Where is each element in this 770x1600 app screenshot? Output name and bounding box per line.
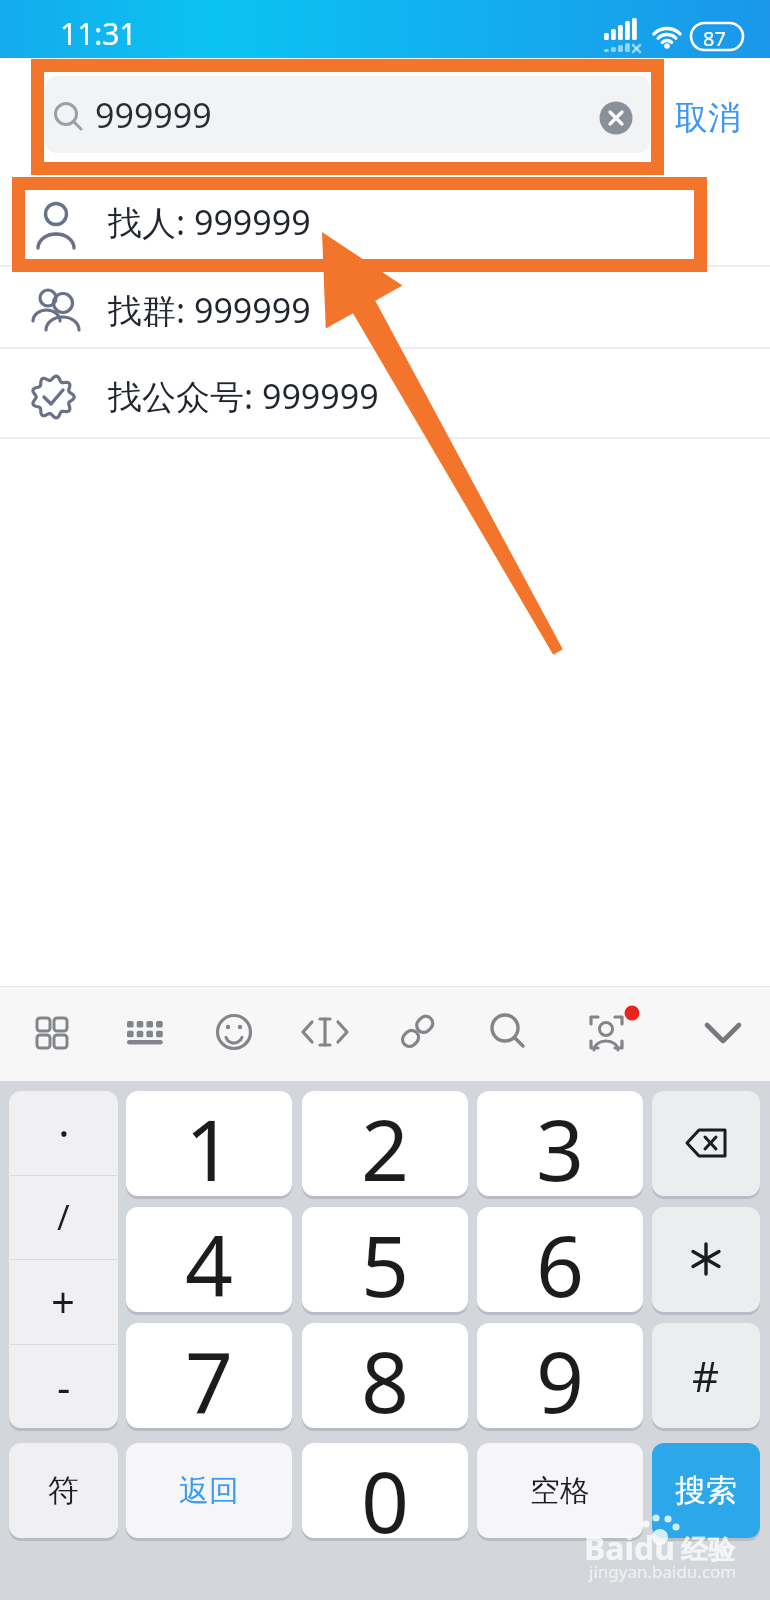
button[interactable]: 9 [477, 1323, 643, 1428]
staticText: 11:31 [60, 13, 137, 54]
button[interactable]: - [9, 1344, 118, 1428]
button[interactable] [693, 1004, 753, 1062]
staticText: 空格 [530, 1472, 590, 1510]
button[interactable]: 符 [9, 1443, 118, 1538]
staticText: 6 [536, 1207, 585, 1312]
button[interactable]: 返回 [126, 1443, 292, 1538]
staticText: 1 [185, 1091, 234, 1196]
staticText: 找群: 999999 [108, 287, 311, 333]
button[interactable]: 找公众号: 999999 [0, 353, 770, 439]
staticText: 9 [536, 1323, 585, 1428]
button[interactable]: 7 [126, 1323, 292, 1428]
staticText: 999999 [95, 92, 212, 138]
staticText: 搜索 [675, 1471, 737, 1510]
staticText: 找公众号: 999999 [108, 373, 379, 419]
button[interactable]: 搜索 [652, 1443, 760, 1538]
button[interactable]: 2 [302, 1091, 468, 1196]
staticText: 87 [703, 25, 726, 52]
button[interactable]: + [9, 1259, 118, 1343]
staticText: 取消 [675, 97, 741, 139]
button[interactable]: 空格 [477, 1443, 643, 1538]
staticText: / [57, 1194, 70, 1240]
button[interactable] [204, 1004, 264, 1062]
button[interactable] [652, 1207, 760, 1312]
button[interactable] [389, 1004, 449, 1062]
staticText: 8 [361, 1323, 410, 1428]
button[interactable]: 6 [477, 1207, 643, 1312]
staticText: jingyan.baidu.com [589, 1560, 737, 1583]
button[interactable]: / [9, 1175, 118, 1259]
button[interactable]: 4 [126, 1207, 292, 1312]
staticText: - [57, 1358, 71, 1415]
staticText: · [58, 1103, 70, 1163]
button[interactable] [113, 1004, 173, 1062]
button[interactable]: # [652, 1323, 760, 1428]
staticText: 0 [361, 1443, 410, 1538]
staticText: 经验 [681, 1533, 735, 1567]
button[interactable] [578, 1004, 638, 1062]
staticText: 4 [185, 1207, 234, 1312]
button[interactable]: 3 [477, 1091, 643, 1196]
button[interactable]: 999999 [45, 76, 650, 153]
staticText: 返回 [179, 1472, 239, 1510]
staticText: # [692, 1347, 720, 1404]
staticText: 2 [361, 1091, 410, 1196]
button[interactable] [652, 1091, 760, 1196]
button[interactable]: 取消 [663, 90, 753, 146]
button[interactable]: 找群: 999999 [0, 269, 770, 351]
button[interactable]: 找人: 999999 [0, 179, 770, 265]
button[interactable]: · [9, 1091, 118, 1175]
staticText: Baidu [584, 1526, 676, 1570]
button[interactable] [295, 1004, 355, 1062]
staticText: 3 [536, 1091, 585, 1196]
button[interactable]: 8 [302, 1323, 468, 1428]
button[interactable]: 5 [302, 1207, 468, 1312]
button[interactable]: 1 [126, 1091, 292, 1196]
button[interactable]: 0 [302, 1443, 468, 1538]
button[interactable] [20, 1004, 80, 1062]
staticText: 符 [48, 1471, 79, 1510]
staticText: 7 [185, 1323, 234, 1428]
button[interactable] [478, 1004, 538, 1062]
staticText: + [51, 1273, 76, 1330]
staticText: 5 [361, 1207, 410, 1312]
staticText: 找人: 999999 [108, 199, 311, 245]
